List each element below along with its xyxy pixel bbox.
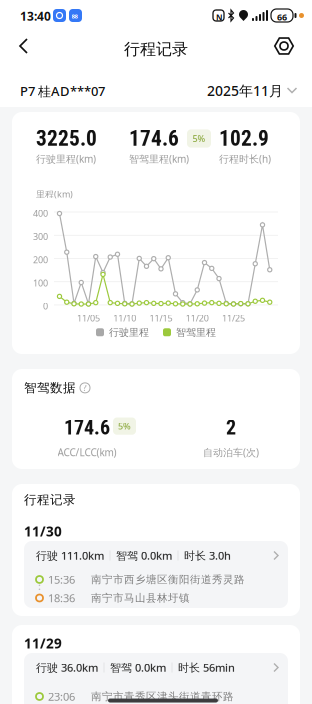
staticText: 行驶 111.0km bbox=[36, 548, 104, 563]
staticText: 南宁市青秀区津头街道青环路 bbox=[91, 690, 234, 703]
staticText: 15:36 bbox=[48, 572, 75, 587]
staticText: 300 bbox=[33, 230, 48, 243]
button[interactable]: 2025年11月 bbox=[207, 81, 297, 100]
staticText: ACC/LCC(km) bbox=[57, 445, 116, 459]
button[interactable]: 行驶 36.0km bbox=[24, 654, 288, 681]
staticText: 行驶里程 bbox=[109, 326, 149, 339]
staticText: 11/29 bbox=[24, 634, 62, 652]
staticText: 2025年11月 bbox=[207, 81, 283, 100]
button[interactable]: Back bbox=[8, 34, 40, 58]
staticText: 400 bbox=[33, 207, 48, 219]
staticText: 11/25 bbox=[222, 312, 245, 324]
staticText: 南宁市西乡塘区衡阳街道秀灵路 bbox=[91, 573, 245, 586]
staticText: 3225.0 bbox=[36, 126, 97, 151]
staticText: N bbox=[216, 12, 223, 23]
button[interactable]: Settings bbox=[270, 34, 298, 58]
staticText: 88 bbox=[71, 12, 77, 20]
staticText: 200 bbox=[33, 254, 48, 266]
staticText: P7 桂AD***07 bbox=[20, 82, 105, 100]
staticText: 行程记录 bbox=[24, 492, 76, 508]
staticText: 行驶 36.0km bbox=[36, 660, 98, 675]
staticText: 23:06 bbox=[48, 689, 75, 704]
staticText: 5% bbox=[118, 420, 131, 432]
staticText: 时长 56min bbox=[178, 660, 235, 675]
staticText: 0 bbox=[43, 300, 48, 312]
staticText: 18:36 bbox=[48, 590, 75, 605]
staticText: ? bbox=[83, 382, 87, 393]
staticText: 100 bbox=[33, 277, 48, 289]
staticText: 行程记录 bbox=[124, 39, 188, 59]
button[interactable]: 行驶 111.0km bbox=[24, 542, 288, 569]
staticText: 自动泊车(次) bbox=[203, 445, 259, 459]
staticText: 智驾数据 bbox=[24, 380, 76, 396]
staticText: 智驾 0.0km bbox=[110, 660, 166, 675]
staticText: 174.6 bbox=[64, 416, 110, 439]
staticText: 智驾里程(km) bbox=[129, 152, 189, 166]
staticText: 2 bbox=[226, 416, 236, 439]
button[interactable]: About smart drive data bbox=[80, 382, 90, 393]
staticText: 11/10 bbox=[113, 312, 136, 324]
staticText: 11/15 bbox=[149, 312, 172, 324]
staticText: 智驾 0.0km bbox=[116, 548, 172, 563]
staticText: 智驾里程 bbox=[176, 326, 216, 339]
staticText: 时长 3.0h bbox=[184, 548, 231, 563]
staticText: 11/30 bbox=[24, 522, 62, 540]
staticText: 行驶里程(km) bbox=[36, 152, 96, 166]
staticText: 174.6 bbox=[129, 126, 179, 151]
staticText: 南宁市马山县林圩镇 bbox=[91, 591, 190, 605]
staticText: 102.9 bbox=[219, 126, 269, 151]
staticText: 11/05 bbox=[77, 312, 100, 324]
staticText: 行程时长(h) bbox=[219, 152, 271, 166]
staticText: 11/20 bbox=[186, 312, 209, 324]
staticText: 里程(km) bbox=[36, 188, 73, 200]
staticText: 5% bbox=[192, 132, 205, 145]
staticText: 13:40 bbox=[20, 8, 51, 24]
staticText: 66 bbox=[277, 11, 287, 23]
